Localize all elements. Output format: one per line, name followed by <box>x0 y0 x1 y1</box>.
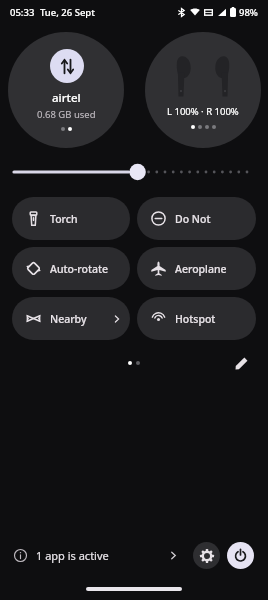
staticText: Nearby Share <box>50 312 108 326</box>
staticText: 98% <box>239 6 258 19</box>
button[interactable]: Nearby Share <box>12 297 130 340</box>
button[interactable]: Hotspot <box>137 297 256 340</box>
button[interactable]: Torch <box>12 197 130 240</box>
staticText: Do Not Disturb <box>175 212 248 226</box>
staticText: Auto-rotate <box>50 262 108 276</box>
staticText: Torch <box>50 212 78 226</box>
staticText: airtel <box>52 90 81 106</box>
button[interactable] <box>14 161 254 183</box>
staticText: 1 app is active <box>36 548 109 563</box>
button[interactable]: airtel <box>8 32 124 148</box>
staticText: 0.68 GB used <box>37 108 96 121</box>
staticText: 05:33 <box>10 6 35 19</box>
button[interactable]: 1 app is active <box>14 532 185 578</box>
staticText: Hotspot <box>175 312 216 326</box>
button[interactable]: Aeroplane mode <box>137 247 256 290</box>
staticText: Tue, 26 Sept <box>40 6 95 19</box>
button[interactable]: Auto-rotate <box>12 247 130 290</box>
button[interactable]: Power <box>227 542 254 569</box>
staticText: L 100% · R 100% <box>167 105 239 118</box>
button[interactable]: Edit tiles <box>230 352 252 374</box>
button[interactable]: Settings <box>193 542 220 569</box>
staticText: Aeroplane mode <box>175 262 248 276</box>
button[interactable]: Do Not Disturb <box>137 197 256 240</box>
button[interactable]: L 100% · R 100% <box>145 32 261 148</box>
